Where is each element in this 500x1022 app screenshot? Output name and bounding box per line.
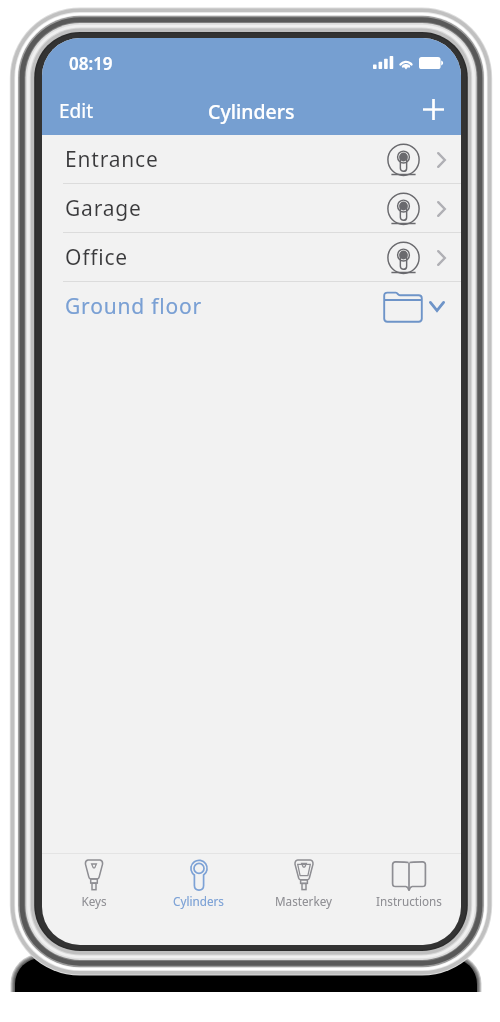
button[interactable]: Cylinders	[146, 854, 251, 945]
staticText: Ground floor	[65, 292, 202, 321]
staticText: Cylinders	[173, 893, 224, 909]
button[interactable]: Edit	[42, 90, 111, 132]
button[interactable]: Masterkey	[251, 854, 356, 945]
staticText: Instructions	[376, 893, 442, 909]
button[interactable]: Office	[42, 233, 461, 282]
staticText: Garage	[65, 194, 142, 223]
staticText: Entrance	[65, 145, 159, 174]
staticText: Masterkey	[275, 893, 332, 909]
button[interactable]: Ground floor	[42, 282, 461, 331]
button[interactable]: Entrance	[42, 135, 461, 184]
button[interactable]: Keys	[42, 854, 146, 945]
staticText: Cylinders	[208, 98, 295, 125]
staticText: 08:19	[69, 52, 113, 75]
button[interactable]: Add	[406, 99, 461, 120]
button[interactable]: Instructions	[356, 854, 461, 945]
button[interactable]: Garage	[42, 184, 461, 233]
staticText: Office	[65, 243, 128, 272]
staticText: Edit	[59, 98, 94, 124]
staticText: Keys	[81, 893, 107, 909]
